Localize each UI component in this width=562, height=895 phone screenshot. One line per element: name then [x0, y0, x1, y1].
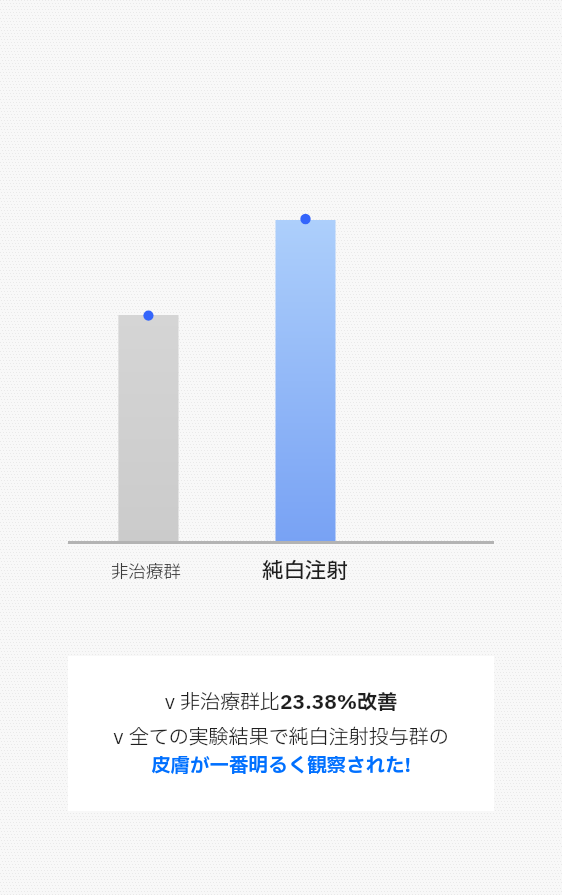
button[interactable]: v 非治療群比23.38%改善 [68, 656, 494, 811]
staticText: v 全ての実験結果で純白注射投与群の [68, 723, 494, 753]
button[interactable]: 非治療群 [111, 559, 181, 585]
staticText: 皮膚が一番明るく観察された! [68, 751, 494, 780]
staticText: v 非治療群比23.38%改善 [68, 688, 494, 718]
staticText: 非治療群 [111, 559, 181, 585]
other: 棒グラフ: 非治療群と純白注射の比較 [0, 0, 562, 895]
button[interactable]: 純白注射 [262, 555, 349, 587]
staticText: 純白注射 [262, 555, 349, 587]
